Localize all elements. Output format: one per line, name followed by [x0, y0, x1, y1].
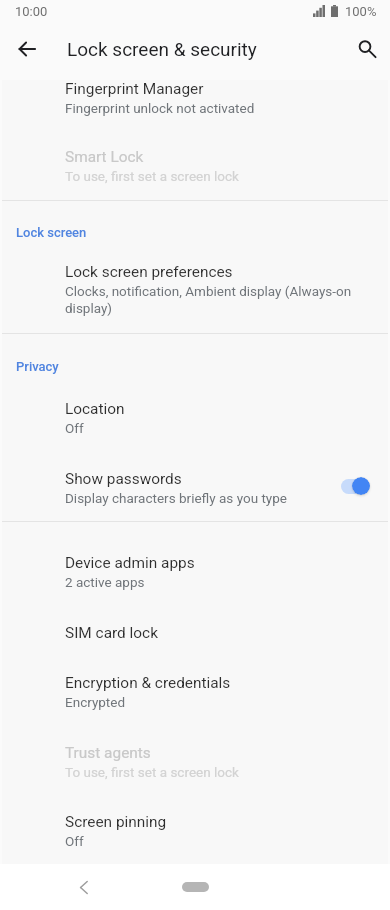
staticText: To use, first set a screen lock — [65, 168, 239, 184]
button[interactable]: Back — [66, 869, 102, 905]
staticText: Lock screen & security — [67, 38, 257, 60]
staticText: 100% — [345, 4, 377, 19]
button[interactable]: Search settings — [348, 30, 386, 68]
staticText: SIM card lock — [65, 624, 158, 642]
staticText: To use, first set a screen lock — [65, 764, 239, 780]
staticText: Smart Lock — [65, 148, 144, 166]
staticText: Show passwords — [65, 470, 182, 488]
staticText: Fingerprint Manager — [65, 80, 204, 98]
staticText: Trust agents — [65, 744, 151, 762]
button[interactable]: SIM card lock — [0, 610, 390, 660]
staticText: Off — [65, 833, 84, 849]
staticText: Encrypted — [65, 694, 126, 710]
button[interactable]: Home — [182, 882, 209, 892]
button[interactable]: Smart Lock — [0, 148, 390, 198]
staticText: Lock screen — [16, 225, 87, 240]
staticText: Lock screen preferences — [65, 263, 233, 281]
button[interactable]: Trust agents — [0, 730, 390, 799]
staticText: Screen pinning — [65, 813, 167, 831]
staticText: Display characters briefly as you type — [65, 490, 287, 506]
button[interactable]: Encryption & credentials — [0, 660, 390, 730]
button[interactable]: Fingerprint Manager — [0, 80, 390, 150]
staticText: Clocks, notification, Ambient display (A… — [65, 283, 377, 316]
staticText: Encryption & credentials — [65, 674, 231, 692]
button[interactable]: Lock screen preferences — [0, 250, 390, 333]
staticText: 10:00 — [15, 4, 48, 19]
staticText: Location — [65, 400, 125, 418]
button[interactable]: Show passwords switch — [336, 470, 376, 502]
button[interactable]: Device admin apps — [0, 540, 390, 610]
staticText: Device admin apps — [65, 554, 195, 572]
staticText: Privacy — [16, 359, 59, 374]
staticText: Off — [65, 420, 84, 436]
button[interactable]: Screen pinning — [0, 799, 390, 864]
button[interactable]: Location — [0, 385, 390, 455]
button[interactable]: Show passwords — [0, 455, 390, 521]
staticText: 2 active apps — [65, 574, 145, 590]
button[interactable]: Navigate up — [8, 30, 46, 68]
staticText: Fingerprint unlock not activated — [65, 100, 255, 116]
